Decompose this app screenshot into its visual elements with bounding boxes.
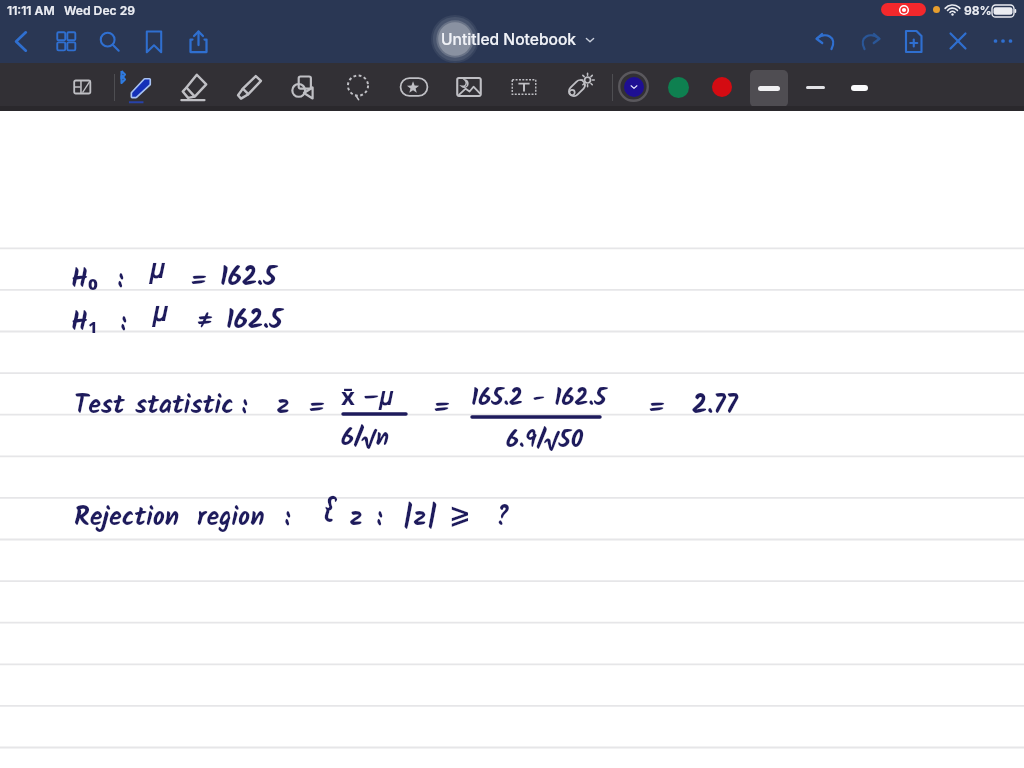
button[interactable]: Image [450, 68, 488, 106]
staticText: z [277, 385, 290, 426]
button[interactable]: Back [4, 24, 38, 58]
button[interactable]: More [986, 24, 1020, 58]
button[interactable]: Lasso [339, 68, 377, 106]
staticText: : [120, 302, 127, 343]
staticText: : [376, 497, 383, 538]
button[interactable]: Untitled Notebook [437, 27, 599, 52]
button[interactable]: Search [92, 24, 126, 58]
staticText: ⩾ [449, 499, 471, 529]
button[interactable]: Undo [809, 24, 843, 58]
button[interactable]: Shapes [285, 68, 323, 106]
staticText: 162.5 [226, 300, 283, 341]
button[interactable]: Highlighter [230, 68, 268, 106]
staticText: H₁ [71, 302, 98, 344]
staticText: 6/√n [341, 419, 390, 457]
button[interactable]: Pen [122, 68, 160, 106]
button[interactable]: Text [505, 68, 543, 106]
staticText: z [350, 497, 363, 538]
staticText: region [197, 497, 265, 538]
button[interactable]: Redo [852, 24, 886, 58]
button[interactable]: Page view [63, 68, 101, 106]
button[interactable]: Medium stroke width [840, 69, 878, 106]
staticText: = [648, 388, 666, 429]
button[interactable]: Thumbnails [49, 24, 83, 58]
staticText: 11:11 AM Wed Dec 29 [7, 3, 136, 18]
staticText: ? [494, 497, 510, 538]
staticText: Rejection [74, 497, 180, 538]
button[interactable]: Add page [896, 24, 930, 58]
staticText: x̄ −𝜇 [341, 379, 392, 417]
button[interactable]: Thick stroke width [750, 70, 788, 107]
staticText: H₀ [71, 259, 98, 301]
button[interactable]: Green ink colour [668, 77, 689, 98]
staticText: : [241, 385, 248, 426]
staticText: { [324, 491, 337, 532]
staticText: statistic [135, 385, 234, 426]
button[interactable]: Thin stroke width [796, 69, 834, 106]
button[interactable]: Laser pointer [560, 68, 598, 106]
staticText: = [308, 388, 326, 429]
staticText: 2.77 [692, 385, 738, 426]
staticText: 165.2 - 162.5 [471, 379, 607, 417]
button[interactable]: Red ink colour [712, 77, 732, 97]
staticText: = [433, 388, 451, 429]
staticText: |z| [402, 497, 439, 538]
staticText: 162.5 [220, 257, 277, 298]
button[interactable]: Share [181, 24, 215, 58]
staticText: 98% [964, 3, 992, 18]
staticText: ≠ [196, 301, 212, 342]
staticText: Untitled Notebook [441, 30, 577, 49]
staticText: : [117, 259, 124, 300]
staticText: : [284, 497, 291, 538]
button[interactable]: Favorites [395, 68, 433, 106]
staticText: 6.9/√50 [506, 421, 584, 459]
button[interactable]: Eraser [176, 68, 214, 106]
staticText: Test [74, 385, 125, 426]
button[interactable]: Close [941, 24, 975, 58]
staticText: = [190, 261, 208, 302]
button[interactable]: Navy ink colour [618, 71, 649, 102]
staticText: 𝜇 [152, 300, 167, 326]
button[interactable]: Bookmark [137, 24, 171, 58]
staticText: 𝜇 [149, 257, 164, 283]
